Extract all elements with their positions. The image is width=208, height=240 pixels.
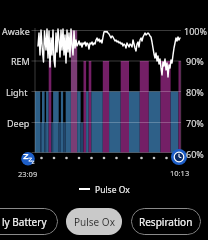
staticText: 23:09 xyxy=(18,169,38,179)
staticText: Pulse Ox xyxy=(95,184,130,196)
staticText: Awake xyxy=(2,25,30,37)
staticText: ly Battery xyxy=(2,215,47,229)
staticText: Light xyxy=(6,86,28,98)
staticText: 100% xyxy=(184,25,207,37)
staticText: REM xyxy=(11,55,30,67)
staticText: Pulse Ox xyxy=(74,215,115,229)
button[interactable]: Respiration xyxy=(131,208,201,235)
staticText: 90% xyxy=(186,55,204,67)
staticText: 70% xyxy=(186,117,204,129)
staticText: 60% xyxy=(186,148,204,160)
button[interactable]: ly Battery xyxy=(0,208,58,235)
staticText: Respiration xyxy=(139,215,193,229)
button[interactable]: Pulse Ox xyxy=(66,208,122,235)
staticText: 10:13 xyxy=(170,168,190,178)
staticText: 80% xyxy=(186,86,204,98)
staticText: Deep xyxy=(7,117,30,129)
